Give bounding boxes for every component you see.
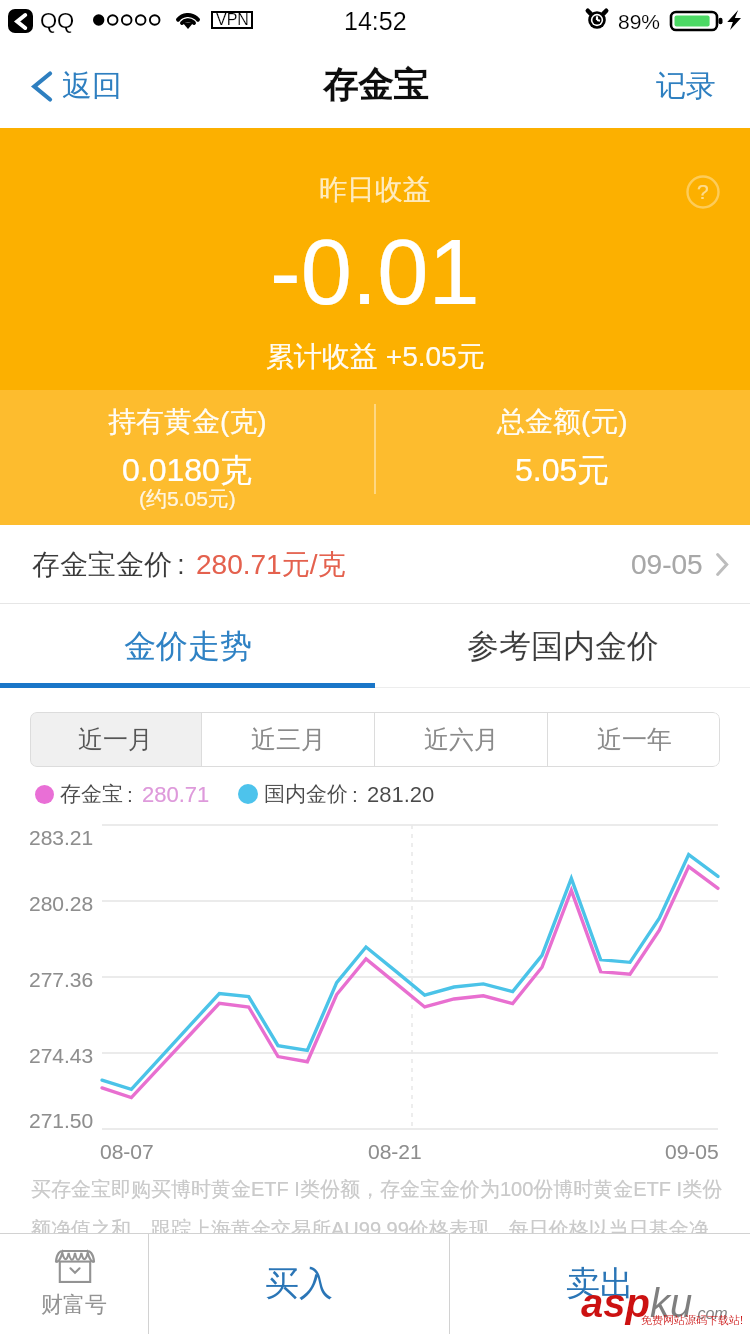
- staticText: -0.01: [270, 221, 480, 324]
- staticText: 0.0180克: [122, 450, 252, 490]
- staticText: 281.20: [367, 782, 435, 807]
- staticText: 近六月: [424, 724, 499, 755]
- staticText: 280.28: [29, 892, 94, 915]
- staticText: QQ: [40, 8, 75, 33]
- staticText: :: [177, 549, 185, 580]
- staticText: 283.21: [29, 826, 94, 849]
- staticText: 5.05元: [515, 450, 610, 490]
- staticText: 免费网站源码下载站!: [641, 1313, 744, 1327]
- staticText: :: [352, 783, 358, 806]
- staticText: :: [127, 783, 133, 806]
- staticText: 返回: [62, 67, 122, 105]
- button[interactable]: 记录: [646, 57, 726, 115]
- staticText: .com: [693, 1305, 728, 1323]
- button[interactable]: 近三月: [202, 712, 374, 767]
- button[interactable]: 近一月: [30, 712, 201, 767]
- button[interactable]: 近六月: [375, 712, 547, 767]
- staticText: 280.71: [142, 782, 210, 807]
- staticText: 记录: [656, 67, 716, 105]
- staticText: 持有黄金(克): [108, 404, 267, 439]
- staticText: 近三月: [251, 724, 326, 755]
- staticText: VPN: [216, 11, 249, 29]
- button[interactable]: 财富号: [0, 1233, 148, 1334]
- staticText: 近一年: [597, 724, 672, 755]
- staticText: (约5.05元): [139, 486, 236, 512]
- staticText: 买存金宝即购买博时黄金ETF I类份额，存金宝金价为100份博时黄金ETF I类…: [31, 1177, 723, 1233]
- button[interactable]: 帮助: [686, 175, 720, 209]
- staticText: 存金宝金价: [32, 547, 172, 582]
- staticText: 280.71元/克: [196, 547, 346, 582]
- staticText: asp: [581, 1281, 650, 1326]
- staticText: 参考国内金价: [467, 626, 659, 666]
- staticText: 买入: [265, 1262, 333, 1305]
- staticText: 09-05: [665, 1140, 719, 1163]
- staticText: 14:52: [344, 7, 407, 35]
- staticText: 卖出: [566, 1262, 634, 1305]
- button[interactable]: 参考国内金价: [375, 604, 750, 688]
- staticText: 09-05: [631, 549, 703, 580]
- staticText: 08-07: [100, 1140, 154, 1163]
- staticText: 金价走势: [124, 626, 252, 666]
- staticText: 国内金价: [264, 781, 348, 807]
- staticText: ku: [650, 1281, 693, 1326]
- staticText: 271.50: [29, 1109, 94, 1132]
- staticText: 89%: [618, 10, 661, 33]
- staticText: 277.36: [29, 968, 94, 991]
- staticText: 近一月: [78, 724, 153, 755]
- button[interactable]: 卖出: [450, 1233, 750, 1334]
- staticText: 274.43: [29, 1044, 94, 1067]
- staticText: 累计收益 +5.05元: [266, 339, 485, 374]
- staticText: ?: [697, 180, 709, 203]
- button[interactable]: 买入: [149, 1233, 449, 1334]
- staticText: 昨日收益: [319, 172, 431, 207]
- button[interactable]: 存金宝金价: [0, 525, 750, 604]
- staticText: 08-21: [368, 1140, 422, 1163]
- staticText: 财富号: [41, 1291, 107, 1319]
- staticText: 存金宝: [60, 781, 123, 807]
- button[interactable]: 返回: [24, 57, 130, 115]
- button[interactable]: 金价走势: [0, 604, 375, 688]
- staticText: 存金宝: [323, 63, 428, 107]
- button[interactable]: 近一年: [548, 712, 720, 767]
- staticText: 总金额(元): [497, 404, 628, 439]
